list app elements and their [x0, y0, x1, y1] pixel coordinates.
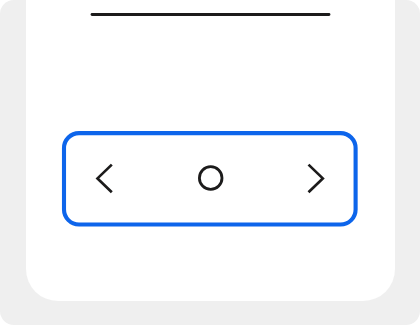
button[interactable] [62, 131, 358, 227]
